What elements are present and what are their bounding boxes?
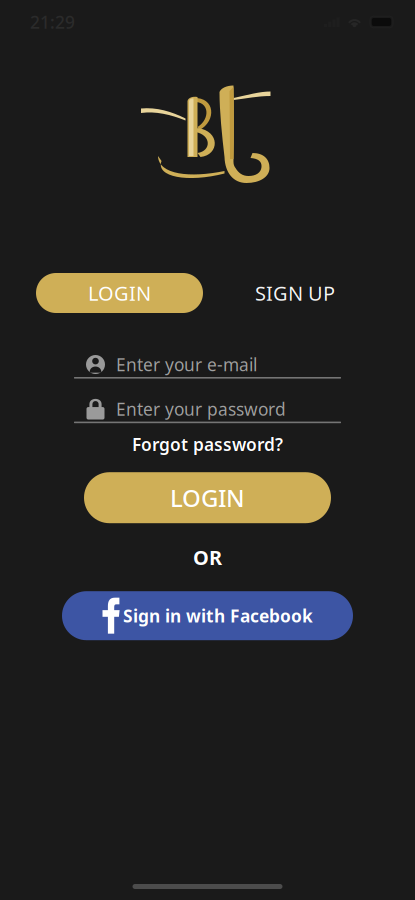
button[interactable]: Sign in with Facebook — [62, 591, 353, 640]
button[interactable]: Enter your password — [74, 397, 341, 423]
staticText: Forgot password? — [132, 433, 283, 456]
staticText: OR — [193, 544, 222, 570]
staticText: LOGIN — [170, 482, 245, 514]
button[interactable]: LOGIN — [36, 273, 203, 313]
staticText: SIGN UP — [255, 280, 335, 306]
button[interactable]: SIGN UP — [230, 273, 360, 313]
staticText: 21:29 — [30, 10, 75, 33]
staticText: LOGIN — [88, 280, 151, 306]
button[interactable]: LOGIN — [84, 472, 331, 523]
button[interactable]: Forgot password? — [132, 432, 283, 456]
staticText: Enter your password — [116, 398, 286, 421]
staticText: Sign in with Facebook — [123, 604, 313, 627]
button[interactable]: Enter your e-mail — [74, 352, 341, 379]
staticText: Enter your e-mail — [116, 353, 257, 376]
